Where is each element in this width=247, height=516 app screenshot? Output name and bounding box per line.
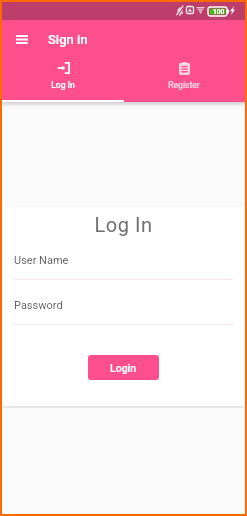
staticText: Register — [168, 80, 200, 90]
staticText: Password — [14, 299, 63, 312]
staticText: User Name — [14, 254, 69, 267]
button[interactable]: Login — [88, 355, 159, 380]
button[interactable]: Log In — [2, 58, 123, 102]
staticText: 100 — [213, 8, 225, 16]
staticText: Sign in — [48, 32, 88, 47]
staticText: Login — [110, 362, 137, 374]
button[interactable]: Open navigation drawer — [8, 20, 35, 58]
staticText: Log In — [51, 80, 75, 90]
button[interactable]: Register — [123, 58, 245, 102]
staticText: Log In — [3, 213, 244, 236]
